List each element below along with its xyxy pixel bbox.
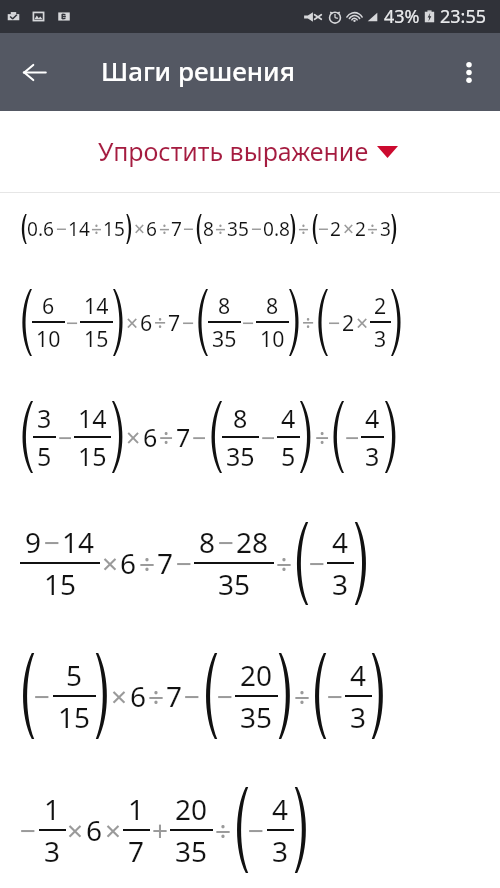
staticText: − — [261, 420, 276, 454]
button[interactable]: Упростить выражение — [0, 111, 500, 192]
staticText: × — [134, 216, 145, 242]
staticText: 6 — [130, 677, 147, 715]
staticText: 2 — [330, 216, 341, 242]
staticText: 3 — [332, 565, 349, 603]
staticText: 4 — [272, 790, 289, 828]
staticText: ÷ — [159, 216, 170, 242]
staticText: 14 — [84, 291, 109, 320]
staticText: − — [183, 216, 194, 242]
staticText: 15 — [44, 565, 77, 603]
staticText: − — [176, 544, 193, 582]
staticText: − — [345, 420, 360, 454]
staticText: 14 — [62, 523, 95, 561]
button[interactable]: More options — [447, 50, 491, 94]
staticText: 6 — [86, 811, 103, 849]
staticText: 20 — [240, 656, 273, 694]
staticText: × — [126, 420, 141, 454]
staticText: 28 — [236, 523, 269, 561]
staticText: × — [126, 308, 139, 337]
staticText: 3 — [365, 439, 380, 473]
staticText: ÷ — [159, 420, 174, 454]
button[interactable]: Back — [12, 50, 56, 94]
staticText: 23:55 — [440, 4, 487, 29]
staticText: ÷ — [367, 216, 378, 242]
staticText: − — [66, 308, 79, 337]
staticText: ÷ — [302, 308, 315, 337]
staticText: − — [56, 216, 67, 242]
staticText: − — [248, 811, 265, 849]
staticText: 3 — [272, 832, 289, 870]
staticText: 35 — [227, 216, 249, 242]
staticText: ÷ — [148, 677, 165, 715]
staticText: 8 — [203, 216, 214, 242]
staticText: 14 — [78, 401, 107, 435]
staticText: − — [44, 523, 61, 561]
staticText: + — [152, 811, 169, 849]
staticText: 20 — [175, 790, 208, 828]
staticText: − — [318, 216, 329, 242]
button[interactable]: 0.6 — [0, 193, 500, 265]
staticText: ÷ — [315, 420, 330, 454]
staticText: 3 — [44, 832, 61, 870]
staticText: 6 — [42, 291, 55, 320]
staticText: 6 — [140, 308, 153, 337]
staticText: 7 — [171, 216, 182, 242]
staticText: − — [251, 216, 262, 242]
staticText: 1 — [128, 790, 145, 828]
staticText: − — [182, 308, 195, 337]
button[interactable]: − — [0, 632, 500, 760]
button[interactable]: 6 — [0, 265, 500, 379]
staticText: 1 — [44, 790, 61, 828]
staticText: 35 — [175, 832, 208, 870]
staticText: ÷ — [294, 677, 311, 715]
staticText: 10 — [260, 324, 285, 353]
staticText: 3 — [350, 698, 367, 736]
staticText: 7 — [168, 308, 181, 337]
staticText: 8 — [218, 291, 231, 320]
staticText: 2 — [374, 291, 387, 320]
staticText: 0.6 — [27, 216, 54, 242]
staticText: ÷ — [91, 216, 102, 242]
staticText: × — [105, 811, 122, 849]
staticText: 8 — [233, 401, 248, 435]
staticText: 4 — [365, 401, 380, 435]
staticText: × — [67, 811, 84, 849]
button[interactable]: − — [0, 750, 500, 888]
staticText: 7 — [176, 420, 191, 454]
staticText: 3 — [37, 401, 52, 435]
staticText: ÷ — [139, 544, 156, 582]
staticText: 8 — [199, 523, 216, 561]
staticText: 0.8 — [263, 216, 290, 242]
staticText: 5 — [66, 656, 83, 694]
staticText: 2 — [355, 216, 366, 242]
staticText: 35 — [226, 439, 255, 473]
staticText: × — [111, 677, 128, 715]
staticText: 4 — [332, 523, 349, 561]
staticText: − — [242, 308, 255, 337]
staticText: 35 — [212, 324, 237, 353]
button[interactable]: 9 — [0, 495, 500, 632]
staticText: 35 — [218, 565, 251, 603]
staticText: − — [218, 523, 235, 561]
staticText: 5 — [281, 439, 296, 473]
button[interactable]: 3 — [0, 379, 500, 495]
staticText: 15 — [78, 439, 107, 473]
staticText: × — [343, 216, 354, 242]
staticText: 14 — [68, 216, 90, 242]
staticText: 15 — [58, 698, 91, 736]
staticText: 3 — [374, 324, 387, 353]
staticText: 6 — [120, 544, 137, 582]
staticText: − — [20, 811, 37, 849]
staticText: Упростить выражение — [98, 134, 369, 168]
staticText: 2 — [342, 308, 355, 337]
staticText: × — [356, 308, 369, 337]
staticText: 4 — [350, 656, 367, 694]
staticText: − — [184, 677, 201, 715]
staticText: 7 — [166, 677, 183, 715]
staticText: ÷ — [154, 308, 167, 337]
staticText: − — [34, 677, 51, 715]
staticText: 6 — [143, 420, 158, 454]
staticText: − — [58, 420, 73, 454]
staticText: 9 — [25, 523, 42, 561]
staticText: ÷ — [215, 216, 226, 242]
